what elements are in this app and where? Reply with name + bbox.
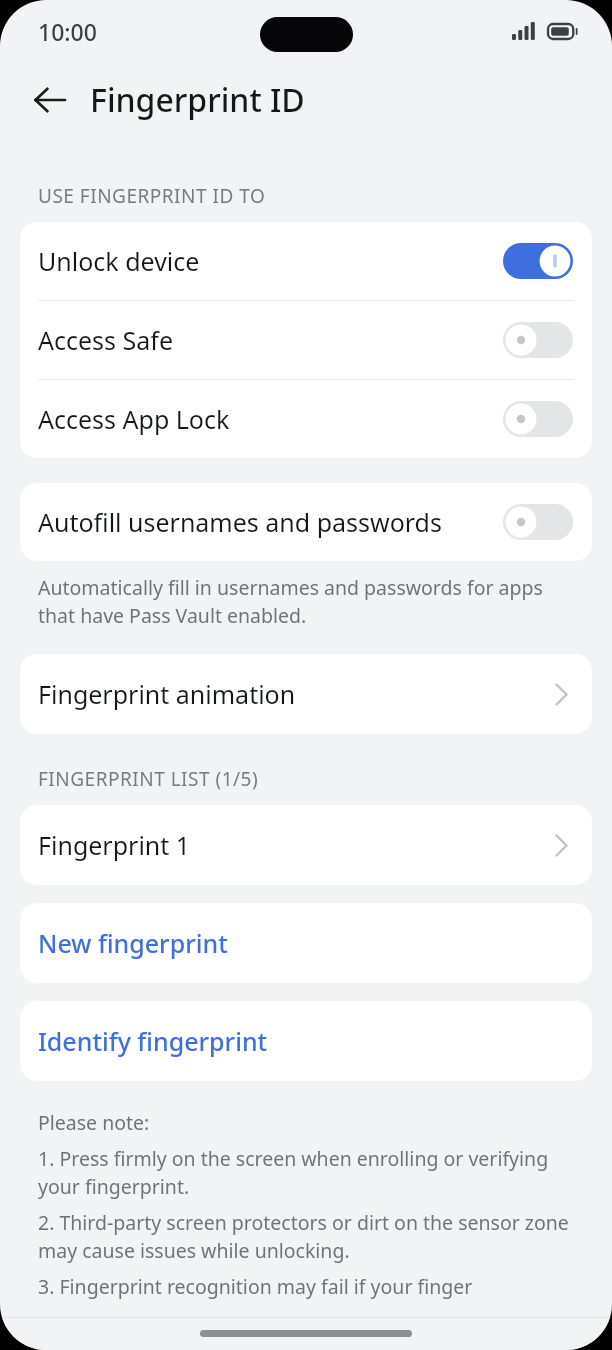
- staticText: New fingerprint: [38, 926, 228, 960]
- button[interactable]: Fingerprint animation: [20, 654, 592, 734]
- button[interactable]: New fingerprint: [20, 903, 592, 983]
- staticText: 10:00: [38, 16, 97, 47]
- staticText: USE FINGERPRINT ID TO: [38, 183, 266, 209]
- button[interactable]: Fingerprint 1: [20, 805, 592, 885]
- staticText: 2. Third-party screen protectors or dirt…: [38, 1209, 574, 1264]
- staticText: Fingerprint ID: [90, 78, 305, 122]
- button[interactable]: Back: [22, 72, 78, 128]
- staticText: Autofill usernames and passwords: [38, 505, 495, 539]
- staticText: Automatically fill in usernames and pass…: [38, 574, 574, 629]
- button[interactable]: Access App Lock: [20, 380, 592, 458]
- button[interactable]: Access Safe: [20, 301, 592, 379]
- staticText: Please note:: [38, 1109, 150, 1136]
- button[interactable]: Unlock device on: [503, 243, 573, 279]
- staticText: Unlock device: [38, 244, 495, 278]
- staticText: FINGERPRINT LIST (1/5): [38, 766, 259, 792]
- button[interactable]: Access Safe off: [503, 322, 573, 358]
- button[interactable]: Access App Lock off: [503, 401, 573, 437]
- button[interactable]: Autofill usernames and passwords off: [503, 504, 573, 540]
- button[interactable]: Unlock device: [20, 222, 592, 300]
- staticText: 3. Fingerprint recognition may fail if y…: [38, 1273, 473, 1300]
- button[interactable]: Identify fingerprint: [20, 1001, 592, 1081]
- staticText: 1. Press firmly on the screen when enrol…: [38, 1145, 574, 1200]
- button[interactable]: Autofill usernames and passwords: [20, 483, 592, 561]
- staticText: Fingerprint animation: [38, 677, 555, 711]
- staticText: Access App Lock: [38, 402, 495, 436]
- staticText: Fingerprint 1: [38, 828, 555, 862]
- staticText: Access Safe: [38, 323, 495, 357]
- staticText: Identify fingerprint: [38, 1024, 268, 1058]
